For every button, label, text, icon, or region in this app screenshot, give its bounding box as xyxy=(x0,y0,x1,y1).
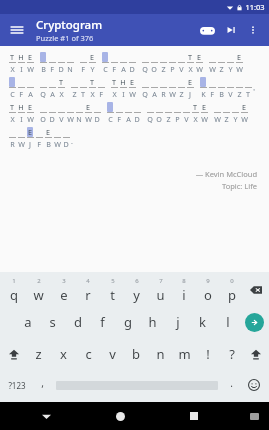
button[interactable]: 7 xyxy=(148,274,172,306)
button[interactable]: E xyxy=(44,127,52,149)
button[interactable]: P xyxy=(168,52,176,74)
button[interactable]: T xyxy=(186,52,194,74)
button[interactable]: ?123 xyxy=(2,370,32,400)
button[interactable]: A xyxy=(26,77,34,99)
button[interactable]: T xyxy=(244,77,252,99)
button[interactable]: T xyxy=(8,102,16,124)
button[interactable]: W xyxy=(208,52,216,74)
button[interactable]: 4 xyxy=(76,274,100,306)
button[interactable]: W xyxy=(213,102,221,124)
button[interactable]: Shift xyxy=(1,338,26,370)
button[interactable]: V xyxy=(57,102,65,124)
button[interactable]: A xyxy=(119,52,127,74)
button[interactable]: N xyxy=(75,102,83,124)
button[interactable]: D xyxy=(128,52,136,74)
button[interactable]: W xyxy=(66,102,74,124)
button[interactable]: Q xyxy=(141,77,149,99)
button[interactable]: Q xyxy=(141,52,149,74)
button[interactable]: ! xyxy=(196,338,220,370)
button[interactable]: . xyxy=(221,370,241,400)
button[interactable]: E xyxy=(26,52,34,74)
button[interactable]: D xyxy=(133,102,141,124)
button[interactable]: s xyxy=(40,306,65,338)
button[interactable]: f xyxy=(90,306,115,338)
button[interactable]: F xyxy=(79,52,87,74)
button[interactable]: E xyxy=(26,102,34,124)
button[interactable]: E xyxy=(195,52,203,74)
button[interactable]: T xyxy=(8,52,16,74)
button[interactable]: Game controller xyxy=(195,18,219,42)
button[interactable]: F xyxy=(110,52,118,74)
button[interactable]: F xyxy=(97,77,105,99)
button[interactable]: v xyxy=(100,338,124,370)
button[interactable]: Z xyxy=(70,77,78,99)
button[interactable]: k xyxy=(190,306,215,338)
button[interactable]: 8 xyxy=(172,274,196,306)
button[interactable]: V xyxy=(182,102,190,124)
button[interactable]: j xyxy=(165,306,190,338)
button[interactable]: g xyxy=(115,306,140,338)
button[interactable]: Open navigation drawer xyxy=(6,19,28,41)
button[interactable]: Y xyxy=(226,52,234,74)
button[interactable]: 1 xyxy=(1,274,26,306)
button[interactable]: Z xyxy=(164,102,172,124)
button[interactable]: F xyxy=(48,52,56,74)
button[interactable]: n xyxy=(148,338,172,370)
button[interactable]: N xyxy=(66,52,74,74)
button[interactable]: D xyxy=(93,102,101,124)
button[interactable]: H xyxy=(119,77,127,99)
button[interactable]: T xyxy=(79,77,87,99)
button[interactable]: R xyxy=(8,127,16,149)
button[interactable]: m xyxy=(172,338,196,370)
button[interactable]: T xyxy=(88,77,96,99)
button[interactable]: E xyxy=(26,127,34,149)
button[interactable]: E xyxy=(84,102,92,124)
button[interactable]: F xyxy=(208,77,216,99)
button[interactable]: Z xyxy=(217,52,225,74)
button[interactable]: Enter xyxy=(245,313,264,332)
button[interactable]: Z xyxy=(159,52,167,74)
button[interactable]: ? xyxy=(220,338,244,370)
button[interactable]: C xyxy=(8,77,16,99)
button[interactable]: A xyxy=(124,102,132,124)
button[interactable]: O xyxy=(150,52,158,74)
button[interactable]: O xyxy=(39,102,47,124)
button[interactable]: H xyxy=(17,102,25,124)
button[interactable]: P xyxy=(173,102,181,124)
button[interactable]: Q xyxy=(146,102,154,124)
button[interactable]: Keyboard xyxy=(241,403,267,429)
button[interactable]: Z xyxy=(177,77,185,99)
button[interactable]: D xyxy=(48,102,56,124)
button[interactable]: B xyxy=(217,77,225,99)
button[interactable]: T xyxy=(57,77,65,99)
button[interactable]: Z xyxy=(235,77,243,99)
button[interactable]: B xyxy=(39,52,47,74)
button[interactable]: W xyxy=(17,127,25,149)
button[interactable]: Home xyxy=(107,403,133,429)
button[interactable]: 0 xyxy=(220,274,244,306)
button[interactable]: V xyxy=(226,77,234,99)
button[interactable]: x xyxy=(51,338,76,370)
button[interactable]: E xyxy=(88,52,96,74)
button[interactable]: W xyxy=(168,77,176,99)
button[interactable]: Space xyxy=(52,370,221,400)
button[interactable]: D xyxy=(57,52,65,74)
button[interactable]: K xyxy=(199,77,207,99)
button[interactable]: z xyxy=(26,338,51,370)
button[interactable]: C xyxy=(101,52,109,74)
button[interactable]: Y xyxy=(231,102,239,124)
button[interactable]: a xyxy=(15,306,40,338)
button[interactable]: E xyxy=(186,77,194,99)
button[interactable]: T xyxy=(110,77,118,99)
button[interactable]: E xyxy=(235,52,243,74)
button[interactable]: Recent apps xyxy=(181,403,207,429)
button[interactable]: W xyxy=(53,127,61,149)
button[interactable]: F xyxy=(17,77,25,99)
button[interactable]: d xyxy=(65,306,90,338)
button[interactable]: Emoji xyxy=(241,370,267,400)
button[interactable]: 5 xyxy=(100,274,124,306)
button[interactable]: Backspace xyxy=(244,274,268,306)
button[interactable]: Shift right xyxy=(244,338,268,370)
button[interactable]: c xyxy=(76,338,100,370)
button[interactable]: h xyxy=(140,306,165,338)
